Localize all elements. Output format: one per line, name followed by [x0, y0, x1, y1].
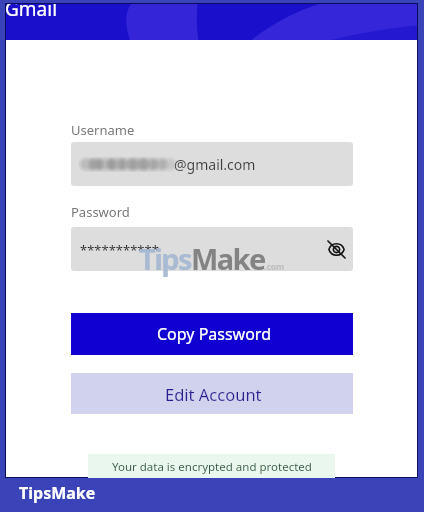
staticText: Copy Password	[157, 323, 272, 345]
button[interactable]: Show password	[324, 237, 348, 261]
button[interactable]: @gmail.com	[71, 142, 353, 186]
staticText: Make	[191, 239, 265, 278]
staticText: @gmail.com	[174, 155, 256, 174]
staticText: Password	[71, 203, 130, 221]
button[interactable]: Edit Account	[71, 373, 353, 414]
button[interactable]: ***********	[71, 227, 353, 271]
staticText: .com	[264, 261, 285, 273]
button[interactable]: Gmail	[6, 4, 58, 22]
staticText: Tips	[139, 239, 191, 278]
staticText: Your data is encrypted and protected	[112, 459, 312, 475]
staticText: Edit Account	[165, 383, 262, 405]
staticText: Username	[71, 121, 135, 139]
button[interactable]: Copy Password	[71, 313, 353, 355]
staticText: ***********	[80, 241, 159, 259]
staticText: TipsMake	[19, 482, 96, 504]
